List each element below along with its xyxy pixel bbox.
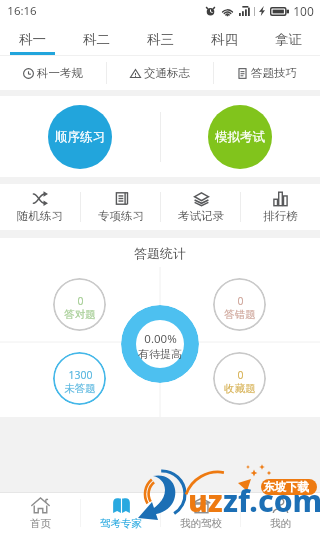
staticText: uz bbox=[188, 480, 223, 521]
staticText: 考试记录 bbox=[178, 209, 224, 223]
button[interactable]: 0 bbox=[53, 278, 106, 331]
button[interactable]: 首页 bbox=[0, 492, 80, 533]
staticText: 有待提高 bbox=[138, 347, 182, 361]
staticText: 科二 bbox=[83, 31, 110, 48]
staticText: 首页 bbox=[30, 517, 51, 530]
staticText: 收藏题 bbox=[224, 382, 256, 395]
staticText: 东坡下载 bbox=[263, 480, 309, 494]
staticText: 未答题 bbox=[64, 382, 96, 395]
staticText: 顺序练习 bbox=[55, 129, 105, 145]
button[interactable]: 科一 bbox=[0, 22, 64, 56]
button[interactable]: 随机练习 bbox=[0, 184, 80, 230]
staticText: 拿证 bbox=[275, 31, 302, 48]
button[interactable]: 我的 bbox=[241, 492, 320, 533]
staticText: 答题统计 bbox=[134, 245, 186, 261]
staticText: 答错题 bbox=[224, 308, 256, 321]
button[interactable]: 科二 bbox=[64, 22, 128, 56]
staticText: 1300 bbox=[68, 368, 93, 382]
button[interactable]: 我的驾校 bbox=[161, 492, 240, 533]
button[interactable]: 拿证 bbox=[256, 22, 320, 56]
staticText: 模拟考试 bbox=[215, 129, 265, 145]
staticText: 16:16 bbox=[7, 3, 37, 19]
button[interactable]: 驾考专家 bbox=[81, 492, 160, 533]
staticText: 科一 bbox=[19, 31, 46, 48]
staticText: 100 bbox=[293, 3, 314, 19]
staticText: 科一考规 bbox=[37, 66, 83, 80]
staticText: 答对题 bbox=[64, 308, 96, 321]
button[interactable]: 专项练习 bbox=[81, 184, 160, 230]
staticText: 科四 bbox=[211, 31, 238, 48]
staticText: 专项练习 bbox=[98, 209, 144, 223]
staticText: 我的驾校 bbox=[180, 517, 222, 530]
staticText: 答题技巧 bbox=[251, 66, 297, 80]
button[interactable]: 交通标志 bbox=[107, 56, 213, 90]
button[interactable]: 科四 bbox=[192, 22, 256, 56]
button[interactable]: 答题技巧 bbox=[214, 56, 320, 90]
staticText: zf.com bbox=[223, 480, 320, 521]
button[interactable]: 顺序练习 bbox=[48, 105, 112, 169]
button[interactable]: 科一考规 bbox=[0, 56, 106, 90]
button[interactable]: 模拟考试 bbox=[208, 105, 272, 169]
staticText: 我的 bbox=[270, 517, 291, 530]
button[interactable]: 0 bbox=[213, 278, 266, 331]
staticText: 0.00% bbox=[144, 331, 177, 347]
staticText: 驾考专家 bbox=[100, 517, 142, 530]
button[interactable]: 0 bbox=[213, 352, 266, 405]
staticText: 0 bbox=[237, 368, 244, 382]
staticText: 交通标志 bbox=[144, 66, 190, 80]
staticText: 科三 bbox=[147, 31, 174, 48]
staticText: 0 bbox=[77, 294, 84, 308]
staticText: 随机练习 bbox=[17, 209, 63, 223]
button[interactable]: 0.00% bbox=[121, 305, 199, 383]
button[interactable]: 考试记录 bbox=[161, 184, 240, 230]
button[interactable]: 科三 bbox=[128, 22, 192, 56]
staticText: 0 bbox=[237, 294, 244, 308]
staticText: 排行榜 bbox=[263, 209, 298, 223]
button[interactable]: 1300 bbox=[53, 352, 106, 405]
button[interactable]: 排行榜 bbox=[241, 184, 320, 230]
